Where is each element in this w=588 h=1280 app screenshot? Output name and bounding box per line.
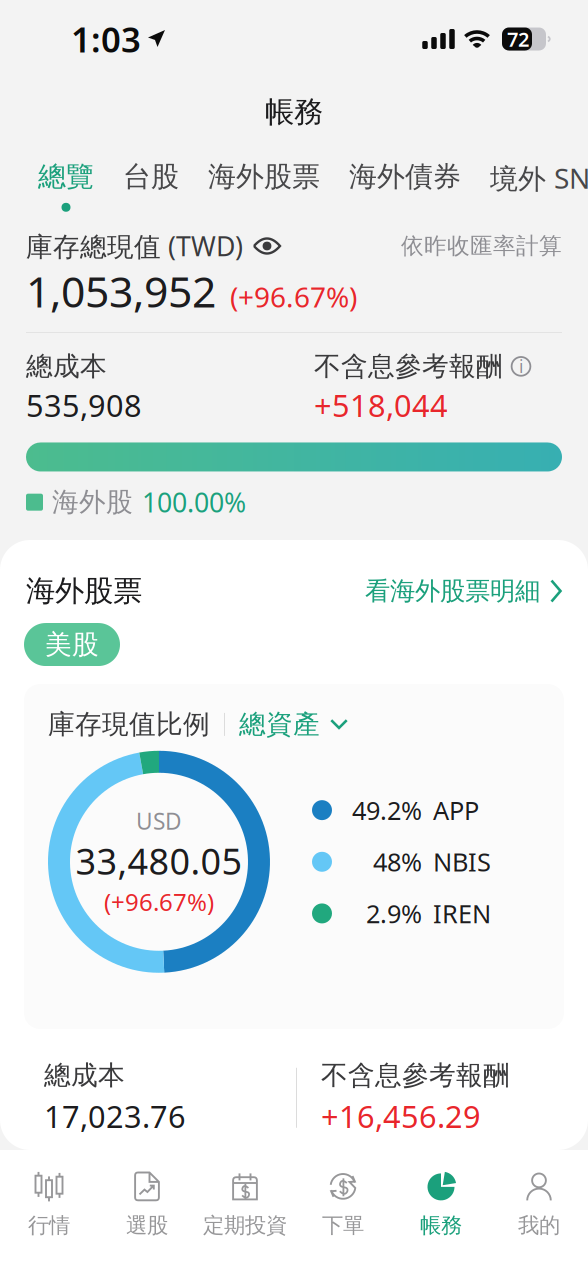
staticText: 1,053,952 (26, 263, 216, 319)
staticText: 下單 (322, 1212, 364, 1239)
staticText: 不含息參考報酬 (314, 350, 503, 383)
staticText: 美股 (45, 628, 99, 661)
staticText: 依昨收匯率計算 (401, 232, 562, 260)
staticText: 海外股票 (208, 159, 320, 194)
staticText: 台股 (123, 159, 179, 194)
staticText: 2.9% (366, 897, 422, 930)
staticText: (+96.67%) (230, 278, 357, 315)
staticText: NBIS (433, 845, 491, 879)
staticText: 總覽 (38, 159, 94, 194)
button[interactable]: 海外債券 (349, 159, 461, 212)
button[interactable]: 境外 SN (490, 159, 588, 215)
staticText: 535,908 (26, 385, 142, 425)
staticText: 帳務 (265, 94, 323, 130)
staticText: 海外債券 (349, 159, 461, 194)
button[interactable]: 總覽 (38, 159, 94, 212)
staticText: 海外股票 (26, 573, 142, 609)
button[interactable]: 下單 (294, 1153, 392, 1277)
staticText: 48% (373, 845, 422, 879)
staticText: 總資產 (239, 708, 320, 741)
staticText: 庫存總現值 (TWD) (26, 228, 243, 264)
staticText: 1:03 (71, 16, 141, 62)
button[interactable]: 總資產 (239, 708, 348, 741)
staticText: +518,044 (314, 385, 448, 425)
staticText: 72 (507, 26, 529, 52)
staticText: +16,456.29 (321, 1096, 481, 1136)
staticText: 總成本 (26, 350, 107, 383)
button[interactable]: 定期投資 (196, 1153, 294, 1277)
staticText: 總成本 (44, 1059, 125, 1092)
button[interactable]: 帳務 (392, 1153, 490, 1277)
staticText: 庫存現值比例 (48, 708, 210, 741)
button[interactable]: 海外股票 (208, 159, 320, 212)
staticText: IREN (433, 897, 491, 930)
staticText: 我的 (518, 1212, 560, 1239)
staticText: 100.00% (142, 484, 246, 520)
staticText: i (519, 355, 523, 378)
staticText: 33,480.05 (75, 837, 242, 885)
button[interactable]: 台股 (123, 159, 179, 212)
staticText: 17,023.76 (44, 1096, 186, 1136)
button[interactable]: 選股 (98, 1153, 196, 1277)
staticText: 境外 SN (490, 159, 588, 197)
staticText: 帳務 (420, 1212, 462, 1239)
staticText: 看海外股票明細 (365, 575, 540, 607)
staticText: USD (136, 806, 182, 836)
button[interactable]: 看海外股票明細 (365, 575, 562, 607)
staticText: (+96.67%) (104, 886, 214, 918)
staticText: 不含息參考報酬 (321, 1059, 510, 1092)
staticText: 海外股 (52, 486, 133, 519)
staticText: 選股 (126, 1212, 168, 1239)
staticText: 49.2% (352, 793, 422, 827)
staticText: 行情 (28, 1212, 70, 1239)
button[interactable]: 美股 (24, 623, 120, 666)
staticText: APP (433, 793, 479, 827)
button[interactable]: 行情 (0, 1153, 98, 1277)
staticText: 定期投資 (203, 1212, 287, 1239)
button[interactable]: 我的 (490, 1153, 588, 1277)
